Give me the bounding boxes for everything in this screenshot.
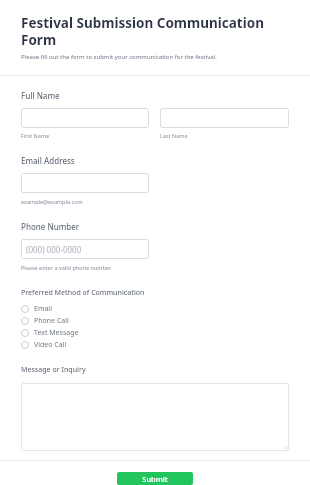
- staticText: First Name: [21, 132, 50, 139]
- staticText: Text Message: [34, 328, 79, 338]
- staticText: Full Name: [21, 90, 60, 101]
- button[interactable]: Email: [21, 303, 289, 315]
- staticText: Phone Call: [34, 316, 69, 326]
- button[interactable]: [21, 383, 289, 451]
- button[interactable]: Text Message: [21, 327, 289, 339]
- button[interactable]: (000) 000-0000: [21, 239, 149, 259]
- staticText: Please enter a valid phone number.: [21, 264, 112, 271]
- staticText: (000) 000-0000: [26, 244, 82, 255]
- button[interactable]: [21, 108, 149, 128]
- staticText: Email: [34, 304, 52, 314]
- staticText: Email Address: [21, 155, 75, 166]
- staticText: Preferred Method of Communication: [21, 288, 145, 298]
- staticText: example@example.com: [21, 198, 83, 205]
- button[interactable]: [21, 173, 149, 193]
- staticText: Video Call: [34, 340, 67, 350]
- staticText: Last Name: [160, 132, 188, 139]
- staticText: Message or Inquiry: [21, 365, 86, 375]
- staticText: Phone Number: [21, 221, 80, 232]
- staticText: Please fill out the form to submit your …: [21, 53, 217, 61]
- staticText: Festival Submission Communication Form: [21, 14, 292, 49]
- button[interactable]: Phone Call: [21, 315, 289, 327]
- button[interactable]: Submit: [117, 472, 193, 485]
- button[interactable]: [160, 108, 289, 128]
- button[interactable]: Video Call: [21, 339, 289, 351]
- staticText: Submit: [142, 474, 168, 484]
